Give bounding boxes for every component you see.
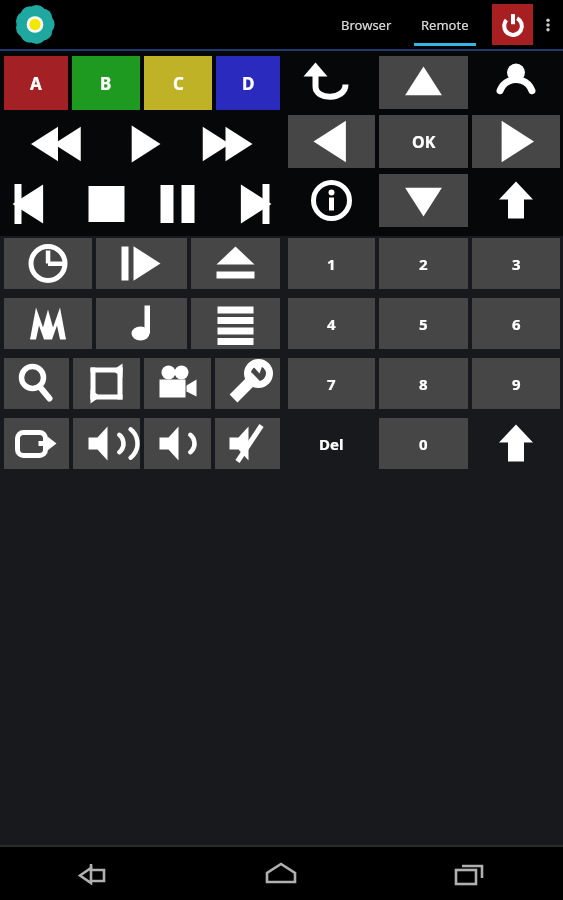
button[interactable]: Remote (414, 0, 476, 49)
button[interactable]: Eject (191, 238, 280, 289)
staticText: Del (319, 434, 344, 454)
button[interactable]: Music (96, 298, 187, 349)
staticText: 1 (327, 254, 336, 274)
button[interactable]: Volume up (73, 418, 140, 469)
staticText: 8 (419, 374, 428, 394)
button[interactable]: Info (288, 174, 375, 227)
button[interactable]: Right (472, 115, 560, 168)
button[interactable]: Home (472, 174, 560, 227)
staticText: OK (412, 131, 436, 153)
button[interactable]: Play (94, 116, 189, 172)
button[interactable]: User (472, 56, 560, 109)
button[interactable]: Recent apps (375, 847, 563, 900)
button[interactable]: Timer (4, 238, 92, 289)
button[interactable]: 4 (288, 298, 375, 349)
button[interactable]: Search (4, 358, 69, 409)
button[interactable]: Step forward (96, 238, 187, 289)
button[interactable]: Home (187, 847, 375, 900)
button[interactable]: Pause (142, 176, 213, 232)
button[interactable]: Rewind (0, 116, 94, 172)
staticText: Browser (341, 16, 392, 34)
staticText: C (173, 72, 184, 95)
button[interactable]: Mute (215, 418, 280, 469)
button[interactable]: Previous (0, 176, 71, 232)
button[interactable]: Back (288, 56, 375, 109)
button[interactable]: Exit (4, 418, 69, 469)
button[interactable]: 0 (379, 418, 468, 469)
button[interactable]: 5 (379, 298, 468, 349)
button[interactable]: Video (144, 358, 211, 409)
staticText: 7 (327, 374, 336, 394)
staticText: 0 (419, 434, 428, 454)
other: App logo (9, 0, 61, 49)
button[interactable]: Power (492, 4, 533, 45)
button[interactable]: B (72, 56, 140, 110)
button[interactable]: Up (379, 56, 468, 109)
staticText: Remote (421, 16, 469, 34)
button[interactable]: Back (0, 847, 187, 900)
button[interactable]: Up (472, 418, 560, 469)
button[interactable]: 7 (288, 358, 375, 409)
button[interactable]: Settings (215, 358, 280, 409)
staticText: A (30, 72, 42, 95)
staticText: 9 (512, 374, 521, 394)
staticText: D (242, 72, 255, 95)
staticText: 2 (419, 254, 428, 274)
staticText: 6 (512, 314, 521, 334)
button[interactable]: D (216, 56, 280, 110)
button[interactable]: Playlist (191, 298, 280, 349)
button[interactable]: C (144, 56, 212, 110)
button[interactable]: Stop (71, 176, 142, 232)
button[interactable]: Fast forward (189, 116, 284, 172)
staticText: 4 (327, 314, 336, 334)
button[interactable]: 9 (472, 358, 560, 409)
button[interactable]: 8 (379, 358, 468, 409)
button[interactable]: Left (288, 115, 375, 168)
button[interactable]: Repeat (73, 358, 140, 409)
button[interactable]: Visualization (4, 298, 92, 349)
button[interactable]: 6 (472, 298, 560, 349)
button[interactable]: 3 (472, 238, 560, 289)
staticText: 3 (512, 254, 521, 274)
button[interactable]: OK (379, 115, 468, 168)
button[interactable]: 2 (379, 238, 468, 289)
button[interactable]: Browser (341, 0, 392, 49)
button[interactable]: Del (288, 418, 375, 469)
button[interactable]: A (4, 56, 68, 110)
button[interactable]: Next (213, 176, 284, 232)
staticText: B (100, 72, 112, 95)
button[interactable]: 1 (288, 238, 375, 289)
button[interactable]: More options (533, 0, 563, 49)
staticText: 5 (419, 314, 428, 334)
button[interactable]: Volume down (144, 418, 211, 469)
button[interactable]: Down (379, 174, 468, 227)
